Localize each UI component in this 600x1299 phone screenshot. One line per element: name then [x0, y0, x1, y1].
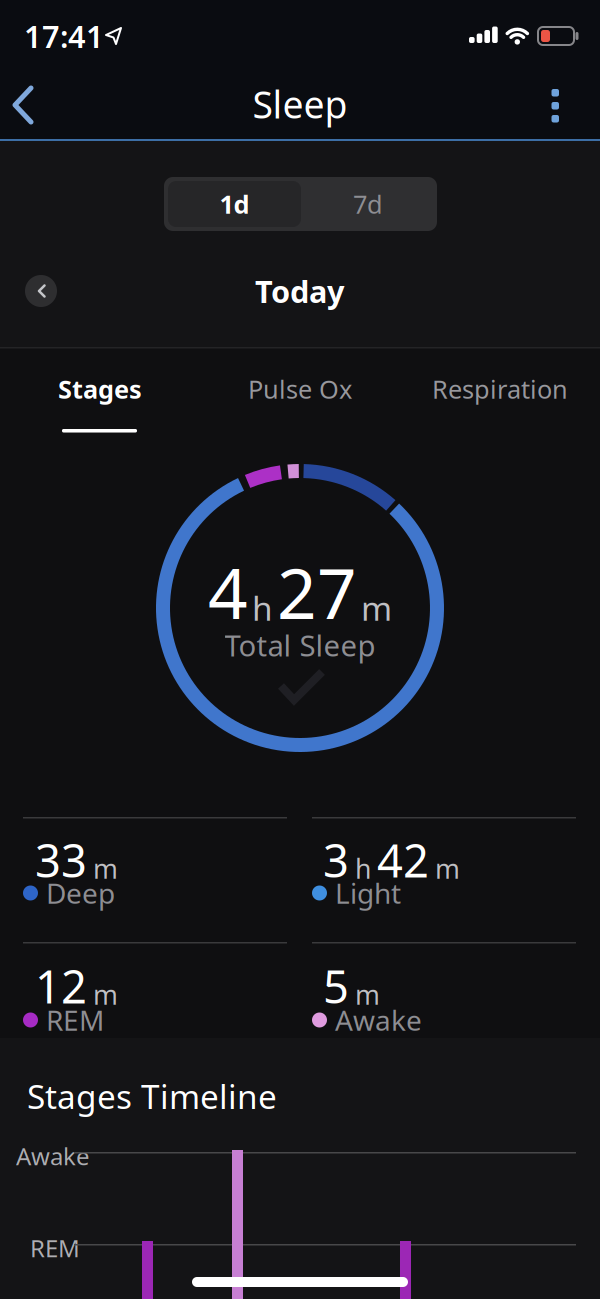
- staticText: 4: [208, 546, 248, 638]
- staticText: 5: [323, 956, 349, 1016]
- staticText: 7d: [353, 187, 383, 221]
- staticText: h: [355, 851, 371, 886]
- staticText: Stages Timeline: [27, 1074, 277, 1118]
- button[interactable]: [535, 77, 575, 135]
- button[interactable]: [0, 70, 60, 140]
- staticText: Total Sleep: [224, 625, 375, 664]
- staticText: 42: [377, 830, 429, 890]
- staticText: Stages: [58, 372, 142, 406]
- staticText: 17:41: [24, 16, 104, 56]
- staticText: 12: [35, 956, 87, 1016]
- staticText: h: [252, 586, 273, 630]
- staticText: Respiration: [432, 372, 568, 406]
- staticText: Today: [255, 271, 345, 311]
- button[interactable]: Pulse Ox: [215, 348, 385, 430]
- staticText: m: [93, 977, 118, 1012]
- staticText: m: [361, 586, 392, 630]
- staticText: m: [93, 851, 118, 886]
- staticText: Awake: [335, 1001, 422, 1039]
- staticText: 1d: [219, 187, 249, 221]
- staticText: Pulse Ox: [248, 372, 352, 406]
- button[interactable]: Stages: [15, 348, 185, 430]
- staticText: Sleep: [252, 79, 347, 129]
- staticText: Light: [335, 874, 401, 912]
- staticText: REM: [46, 1001, 104, 1039]
- staticText: REM: [30, 1232, 80, 1264]
- staticText: 27: [277, 546, 357, 638]
- staticText: 3: [323, 830, 349, 890]
- staticText: m: [355, 977, 380, 1012]
- staticText: 33: [35, 830, 87, 890]
- staticText: Awake: [16, 1140, 90, 1172]
- staticText: Deep: [46, 874, 115, 912]
- staticText: m: [435, 851, 460, 886]
- button[interactable]: 7d: [303, 181, 433, 227]
- button[interactable]: [25, 275, 57, 307]
- button[interactable]: 1d: [168, 181, 301, 227]
- button[interactable]: Respiration: [415, 348, 585, 430]
